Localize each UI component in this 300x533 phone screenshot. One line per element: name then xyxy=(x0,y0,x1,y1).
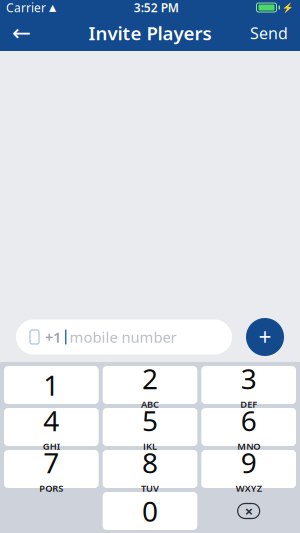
staticText: Send xyxy=(250,22,288,44)
staticText: DEF xyxy=(240,398,257,410)
staticText: +1 xyxy=(45,327,61,347)
button[interactable]: 2 xyxy=(103,366,197,404)
staticText: WXYZ xyxy=(236,482,262,494)
staticText: 5 xyxy=(142,402,158,439)
staticText: 8 xyxy=(142,444,158,481)
staticText: 2 xyxy=(142,360,158,397)
button[interactable]: 1 xyxy=(4,366,99,404)
button[interactable]: 3 xyxy=(201,366,296,404)
staticText: MNO xyxy=(237,440,260,452)
staticText: ⚡ xyxy=(282,2,294,13)
staticText: 6 xyxy=(241,402,257,439)
button[interactable]: 4 xyxy=(4,408,99,446)
button[interactable]: 5 xyxy=(103,408,197,446)
staticText: 0 xyxy=(142,492,158,530)
staticText: + xyxy=(258,322,271,352)
button[interactable]: 9 xyxy=(201,450,296,488)
staticText: ← xyxy=(12,20,31,46)
staticText: 4 xyxy=(43,402,59,439)
staticText: 7 xyxy=(43,444,59,481)
staticText: 1 xyxy=(43,366,59,404)
staticText: 3 xyxy=(241,360,257,397)
staticText: JKL xyxy=(143,440,157,452)
staticText: mobile number xyxy=(69,327,176,347)
staticText: TUV xyxy=(141,482,159,494)
button[interactable]: Add number xyxy=(246,318,284,356)
button[interactable]: 8 xyxy=(103,450,197,488)
button[interactable]: 6 xyxy=(201,408,296,446)
staticText: 3:52 PM xyxy=(134,0,179,15)
staticText: ▲ xyxy=(49,2,56,13)
staticText: 9 xyxy=(241,444,257,481)
button[interactable]: Send xyxy=(238,15,300,51)
staticText: ABC xyxy=(141,398,159,410)
button[interactable]: 7 xyxy=(4,450,99,488)
button[interactable]: Delete xyxy=(201,492,296,530)
staticText: PQRS xyxy=(39,482,63,494)
button[interactable]: 0 xyxy=(103,492,197,530)
staticText: GHI xyxy=(43,440,60,452)
staticText: Carrier xyxy=(6,0,46,15)
button[interactable]: Back xyxy=(0,15,43,51)
staticText: × xyxy=(245,501,253,521)
staticText: Invite Players xyxy=(88,21,211,45)
